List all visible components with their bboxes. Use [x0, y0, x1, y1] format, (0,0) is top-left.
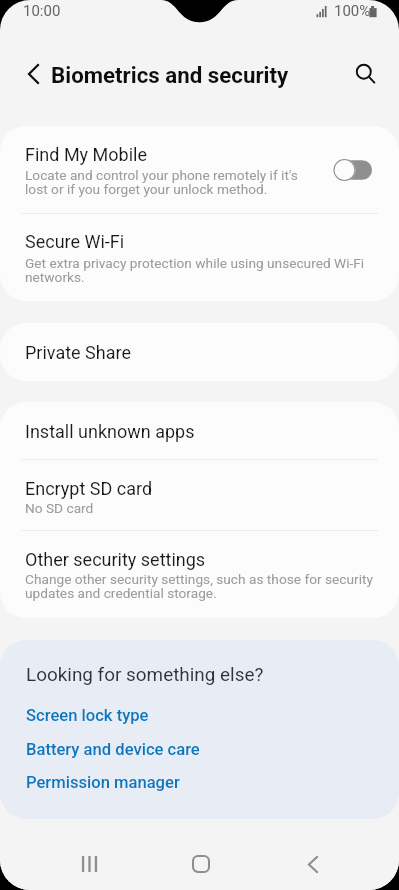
- button[interactable]: Other security settings: [0, 531, 399, 618]
- button[interactable]: Find My Mobile: [0, 126, 399, 214]
- button[interactable]: Home: [171, 838, 231, 890]
- button[interactable]: Back: [14, 55, 52, 93]
- button[interactable]: Back: [282, 838, 342, 890]
- button[interactable]: Search: [344, 53, 382, 91]
- button[interactable]: Recent apps: [59, 838, 119, 890]
- staticText: Find My Mobile: [25, 144, 147, 165]
- staticText: Encrypt SD card: [25, 478, 153, 499]
- staticText: 100%: [334, 2, 371, 20]
- staticText: Biometrics and security: [51, 62, 289, 88]
- staticText: Battery and device care: [26, 740, 200, 759]
- staticText: Other security settings: [25, 549, 206, 570]
- staticText: Looking for something else?: [26, 663, 264, 685]
- button[interactable]: Screen lock type: [0, 698, 399, 732]
- staticText: Change other security settings, such as …: [25, 571, 373, 601]
- button[interactable]: Install unknown apps: [0, 402, 399, 460]
- staticText: No SD card: [25, 500, 94, 516]
- button[interactable]: Secure Wi-Fi: [0, 214, 399, 301]
- staticText: 10:00: [23, 2, 61, 20]
- staticText: Private Share: [25, 342, 131, 363]
- staticText: Secure Wi-Fi: [25, 231, 125, 252]
- button[interactable]: Permission manager: [0, 765, 399, 799]
- button[interactable]: Private Share: [0, 323, 399, 381]
- staticText: Get extra privacy protection while using…: [25, 255, 365, 285]
- button[interactable]: Find My Mobile switch: [333, 158, 372, 182]
- button[interactable]: Battery and device care: [0, 732, 399, 766]
- staticText: Screen lock type: [26, 706, 149, 725]
- staticText: Install unknown apps: [25, 421, 195, 442]
- staticText: Permission manager: [26, 773, 180, 792]
- button[interactable]: Encrypt SD card: [0, 460, 399, 531]
- staticText: Locate and control your phone remotely i…: [25, 167, 298, 197]
